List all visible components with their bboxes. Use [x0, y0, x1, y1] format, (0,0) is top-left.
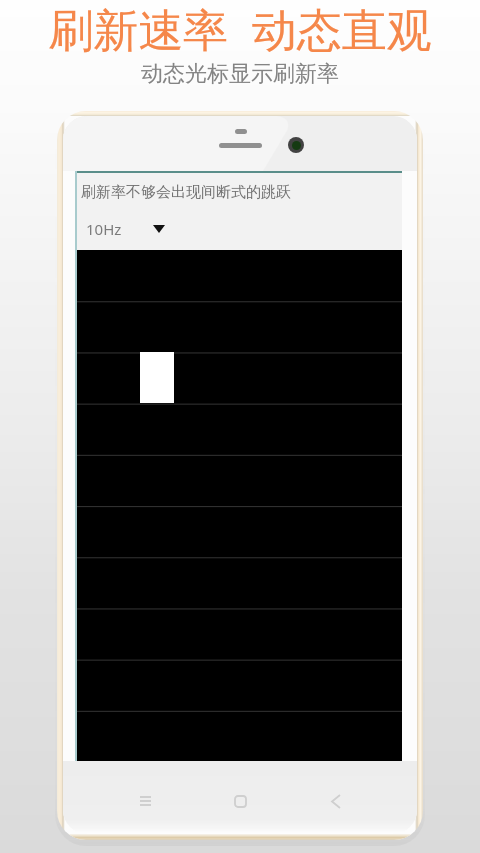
button[interactable]: Back: [319, 784, 353, 818]
button[interactable]: 10Hz: [86, 218, 165, 240]
staticText: 10Hz: [86, 219, 122, 239]
staticText: 动态光标显示刷新率: [141, 60, 339, 88]
staticText: 刷新速率 动态直观: [48, 0, 432, 59]
staticText: 刷新率不够会出现间断式的跳跃: [81, 183, 291, 202]
button[interactable]: Home: [223, 784, 257, 818]
button[interactable]: Recent apps: [128, 784, 162, 818]
